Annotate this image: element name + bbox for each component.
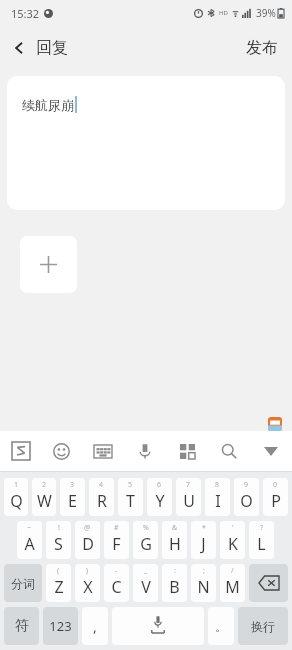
staticText: ~ bbox=[27, 523, 32, 533]
staticText: 15:32 bbox=[11, 6, 40, 21]
other: Back bbox=[12, 41, 26, 55]
button[interactable]: Space bbox=[112, 607, 204, 645]
button[interactable]: ' bbox=[220, 521, 245, 559]
staticText: 分词 bbox=[11, 576, 35, 591]
staticText: Y bbox=[155, 490, 165, 512]
staticText: R bbox=[97, 490, 107, 512]
button[interactable]: Sticker bbox=[268, 417, 282, 431]
button[interactable]: * bbox=[191, 521, 216, 559]
button[interactable]: 3 bbox=[60, 478, 85, 516]
button[interactable]: Apps bbox=[166, 431, 208, 471]
staticText: C bbox=[111, 576, 122, 598]
staticText: _ bbox=[144, 566, 148, 576]
button[interactable]: Input method bbox=[0, 431, 41, 471]
button[interactable]: 0 bbox=[263, 478, 288, 516]
staticText: 39% bbox=[256, 6, 276, 20]
staticText: / bbox=[231, 566, 234, 576]
staticText: : bbox=[174, 566, 176, 576]
staticText: 换行 bbox=[251, 619, 275, 634]
staticText: A bbox=[24, 533, 35, 555]
button[interactable]: 符 bbox=[4, 607, 39, 645]
staticText: V bbox=[141, 576, 151, 598]
button[interactable]: Back bbox=[0, 30, 78, 66]
staticText: F bbox=[112, 533, 121, 555]
staticText: S bbox=[54, 533, 63, 555]
staticText: 。 bbox=[215, 619, 227, 634]
button[interactable]: 。 bbox=[208, 607, 234, 645]
button[interactable]: 2 bbox=[32, 478, 56, 516]
staticText: ) bbox=[86, 566, 89, 576]
button[interactable]: 6 bbox=[147, 478, 172, 516]
button[interactable]: - bbox=[104, 564, 129, 602]
button[interactable]: 7 bbox=[176, 478, 201, 516]
staticText: H bbox=[169, 533, 181, 555]
button[interactable]: , bbox=[82, 607, 108, 645]
staticText: U bbox=[183, 490, 195, 512]
staticText: 9 bbox=[244, 480, 249, 490]
button[interactable]: & bbox=[162, 521, 187, 559]
button[interactable]: 换行 bbox=[238, 607, 288, 645]
button[interactable]: ; bbox=[191, 564, 216, 602]
button[interactable]: % bbox=[133, 521, 158, 559]
staticText: 3 bbox=[70, 480, 75, 490]
staticText: M bbox=[225, 576, 240, 598]
staticText: 回复 bbox=[36, 38, 68, 58]
button[interactable]: Voice bbox=[124, 431, 166, 471]
staticText: O bbox=[240, 490, 253, 512]
staticText: 6 bbox=[157, 480, 162, 490]
staticText: D bbox=[82, 533, 94, 555]
staticText: ' bbox=[232, 523, 234, 533]
button[interactable]: 发布 bbox=[232, 30, 292, 66]
staticText: I bbox=[215, 490, 221, 512]
button[interactable]: Keyboard bbox=[82, 431, 124, 471]
button[interactable]: / bbox=[220, 564, 245, 602]
button[interactable]: @ bbox=[75, 521, 100, 559]
button[interactable]: 123 bbox=[43, 607, 78, 645]
staticText: W bbox=[37, 490, 52, 512]
staticText: P bbox=[271, 490, 281, 512]
button[interactable]: ) bbox=[75, 564, 100, 602]
staticText: 1 bbox=[14, 480, 19, 490]
staticText: 123 bbox=[49, 617, 72, 635]
staticText: 0 bbox=[273, 480, 278, 490]
staticText: N bbox=[197, 576, 210, 598]
button[interactable]: 4 bbox=[89, 478, 114, 516]
staticText: 7 bbox=[186, 480, 191, 490]
button[interactable]: Backspace bbox=[249, 564, 288, 602]
staticText: % bbox=[143, 523, 149, 533]
button[interactable]: 8 bbox=[205, 478, 230, 516]
staticText: 4 bbox=[99, 480, 104, 490]
staticText: 2 bbox=[42, 480, 47, 490]
button[interactable]: 续航尿崩 bbox=[7, 76, 285, 210]
staticText: G bbox=[140, 533, 152, 555]
staticText: - bbox=[115, 566, 118, 576]
button[interactable]: Search bbox=[208, 431, 250, 471]
button[interactable]: ! bbox=[46, 521, 71, 559]
button[interactable]: Add image bbox=[20, 236, 77, 293]
button[interactable]: ( bbox=[46, 564, 71, 602]
staticText: 续航尿崩 bbox=[22, 97, 74, 113]
staticText: Z bbox=[54, 576, 64, 598]
staticText: Q bbox=[10, 490, 23, 512]
staticText: J bbox=[201, 533, 206, 555]
button[interactable]: 5 bbox=[118, 478, 143, 516]
staticText: ; bbox=[203, 566, 205, 576]
button[interactable]: Emoji bbox=[41, 431, 82, 471]
button[interactable]: : bbox=[162, 564, 187, 602]
staticText: K bbox=[228, 533, 238, 555]
staticText: & bbox=[172, 523, 178, 533]
staticText: # bbox=[114, 523, 119, 533]
button[interactable]: 9 bbox=[234, 478, 259, 516]
button[interactable]: 分词 bbox=[4, 564, 42, 602]
staticText: 8 bbox=[215, 480, 220, 490]
button[interactable]: _ bbox=[133, 564, 158, 602]
button[interactable]: ~ bbox=[17, 521, 42, 559]
button[interactable]: ? bbox=[249, 521, 274, 559]
button[interactable]: # bbox=[104, 521, 129, 559]
button[interactable]: Collapse bbox=[250, 431, 292, 471]
staticText: 发布 bbox=[246, 38, 278, 58]
staticText: T bbox=[126, 490, 135, 512]
staticText: ? bbox=[260, 523, 264, 533]
button[interactable]: 1 bbox=[4, 478, 28, 516]
staticText: * bbox=[202, 523, 206, 533]
